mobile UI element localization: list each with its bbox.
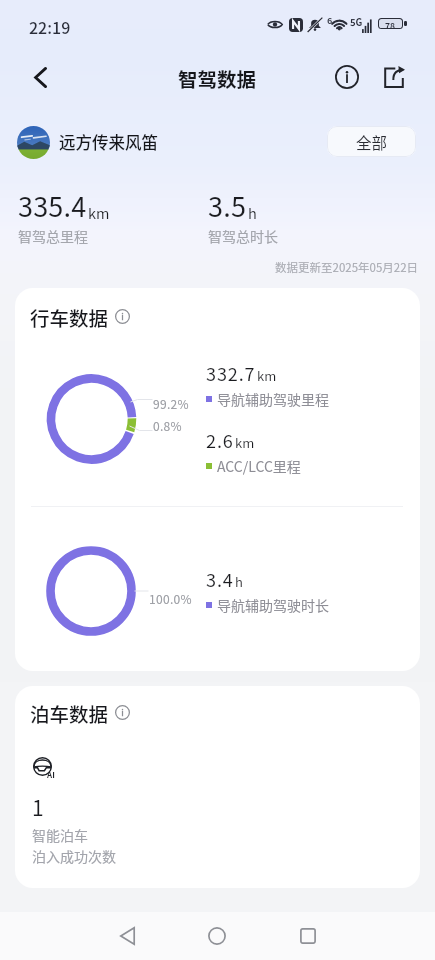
- button[interactable]: 全部: [327, 126, 416, 157]
- staticText: km: [257, 366, 277, 385]
- staticText: 导航辅助驾驶里程: [217, 389, 329, 409]
- button[interactable]: Info: [326, 56, 368, 98]
- staticText: 全部: [356, 131, 388, 153]
- staticText: 22:19: [29, 15, 71, 38]
- button[interactable]: Back: [19, 56, 62, 99]
- button[interactable]: Home: [195, 914, 239, 958]
- staticText: 335.4: [18, 186, 87, 225]
- button[interactable]: Info: [111, 305, 133, 327]
- staticText: h: [235, 572, 243, 591]
- staticText: 智能泊车: [32, 825, 88, 845]
- staticText: 数据更新至2025年05月22日: [275, 259, 419, 276]
- button[interactable]: Back: [105, 914, 149, 958]
- staticText: 78: [385, 19, 396, 28]
- staticText: km: [235, 433, 255, 452]
- staticText: 0.8%: [153, 417, 182, 434]
- staticText: 5G: [350, 15, 363, 29]
- staticText: 100.0%: [149, 590, 192, 607]
- staticText: 智驾数据: [178, 64, 257, 92]
- button[interactable]: Share: [373, 56, 415, 98]
- button[interactable]: Info: [111, 701, 133, 723]
- staticText: 远方传来风笛: [59, 130, 158, 154]
- staticText: 智驾总时长: [208, 226, 278, 246]
- staticText: km: [88, 202, 110, 223]
- staticText: h: [248, 202, 257, 223]
- staticText: 2.6: [206, 427, 234, 453]
- button[interactable]: Recent apps: [286, 914, 330, 958]
- staticText: 泊入成功次数: [32, 846, 116, 866]
- staticText: 1: [32, 792, 44, 822]
- staticText: 导航辅助驾驶时长: [217, 595, 329, 615]
- staticText: 行车数据: [30, 303, 109, 329]
- staticText: ACC/LCC里程: [217, 456, 301, 476]
- staticText: 泊车数据: [30, 699, 109, 725]
- staticText: 3.5: [208, 186, 247, 225]
- staticText: 99.2%: [153, 395, 189, 412]
- staticText: 6: [327, 14, 333, 27]
- staticText: 332.7: [206, 360, 256, 386]
- staticText: 智驾总里程: [18, 226, 88, 246]
- staticText: 3.4: [206, 566, 234, 592]
- staticText: AI: [47, 769, 55, 781]
